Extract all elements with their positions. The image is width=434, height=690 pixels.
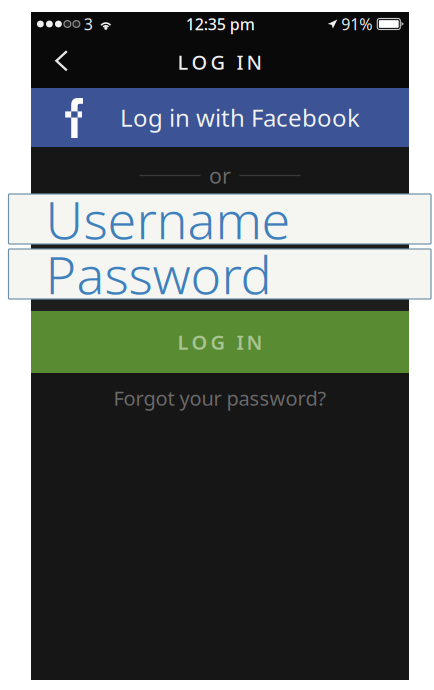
staticText: Username [53,216,157,244]
button[interactable]: Back [31,36,78,86]
staticText: Password [53,271,149,299]
staticText: L O G I N [177,49,262,75]
button[interactable]: Username [8,194,431,244]
staticText: 3 [84,13,93,35]
staticText: Forgot your password? [113,385,326,411]
staticText: Log in with Facebook [120,102,360,133]
staticText: 12:35 pm [186,13,255,35]
button[interactable]: Password [8,249,431,299]
button[interactable]: L O G I N [31,311,409,373]
staticText: L O G I N [177,329,262,355]
button[interactable]: Username [31,204,409,256]
staticText: or [209,161,231,190]
button[interactable]: Log in with Facebook [31,88,409,147]
staticText: 91% [341,13,372,35]
staticText: Username [45,184,290,254]
staticText: Password [45,239,271,309]
button[interactable]: Forgot your password? [31,373,409,423]
button[interactable]: Password [31,259,409,311]
